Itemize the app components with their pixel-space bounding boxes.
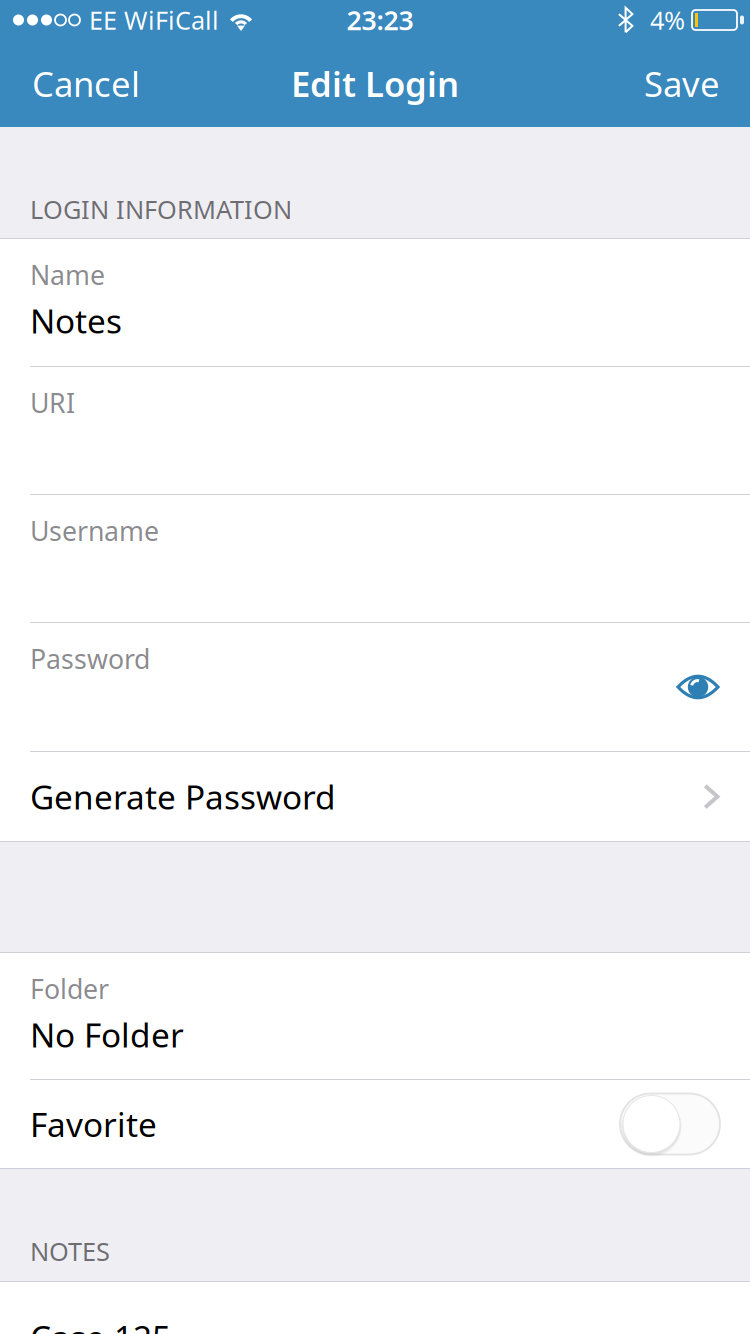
- button[interactable]: Password: [0, 623, 750, 751]
- staticText: URI: [30, 385, 75, 420]
- staticText: Save: [644, 60, 720, 106]
- staticText: Username: [30, 513, 159, 548]
- staticText: Password: [30, 641, 150, 676]
- button[interactable]: Favorite: [620, 1093, 720, 1154]
- button[interactable]: URI: [0, 367, 750, 494]
- button[interactable]: Folder: [0, 953, 750, 1079]
- staticText: Cancel: [32, 60, 140, 106]
- staticText: NOTES: [30, 1234, 110, 1268]
- button[interactable]: Toggle password visibility: [664, 660, 732, 713]
- button[interactable]: Generate Password: [0, 752, 750, 841]
- staticText: LOGIN INFORMATION: [30, 192, 292, 226]
- staticText: EE WiFiCall: [89, 3, 219, 37]
- staticText: 4%: [650, 3, 685, 37]
- staticText: Case 125: [30, 1315, 171, 1334]
- staticText: Notes: [30, 298, 122, 343]
- staticText: Generate Password: [30, 774, 336, 819]
- staticText: Folder: [30, 971, 109, 1006]
- button[interactable]: Save: [628, 53, 736, 113]
- staticText: No Folder: [30, 1012, 184, 1057]
- button[interactable]: Name: [0, 239, 750, 366]
- staticText: Edit Login: [291, 60, 459, 106]
- button[interactable]: Cancel: [14, 53, 156, 113]
- staticText: Name: [30, 257, 105, 292]
- staticText: Favorite: [30, 1102, 157, 1146]
- staticText: 23:23: [346, 2, 413, 38]
- button[interactable]: Username: [0, 495, 750, 622]
